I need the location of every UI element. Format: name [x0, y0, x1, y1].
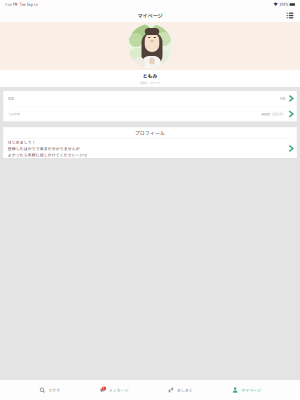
button[interactable]: 1	[99, 380, 129, 399]
button[interactable]: あしあと	[167, 380, 193, 399]
staticText: プロフィール	[135, 130, 165, 136]
staticText: Tue Sep 19	[17, 2, 38, 7]
staticText: ともみ	[142, 72, 157, 79]
button[interactable]: Menu	[283, 9, 296, 22]
staticText: マイページ	[137, 12, 162, 19]
staticText: はじめまして！	[8, 139, 36, 145]
button[interactable]: つぶやき	[3, 106, 296, 121]
button[interactable]: 写真	[3, 91, 296, 106]
button[interactable]: さがす	[39, 380, 60, 399]
staticText: さがす	[48, 387, 60, 393]
button[interactable]: はじめまして！	[3, 139, 296, 158]
staticText: メッセージ	[109, 387, 129, 393]
staticText: 未設定（ひとり）	[261, 111, 285, 116]
staticText: • • •	[147, 1, 152, 5]
staticText: 100%	[279, 2, 288, 7]
staticText: 写真	[8, 96, 14, 101]
staticText: つぶやき	[8, 111, 20, 116]
staticText: （東京／ひとり）	[138, 80, 162, 85]
staticText: よかったら気軽に話しかけてくださいヽ(^^)/	[8, 152, 87, 158]
staticText: 0枚	[280, 96, 285, 101]
button[interactable]: マイページ	[232, 380, 261, 399]
staticText: 7:19 PM	[5, 2, 17, 7]
staticText: 1	[103, 387, 105, 390]
staticText: あしあと	[177, 387, 193, 393]
staticText: マイページ	[241, 387, 261, 393]
staticText: 登録したばかりで楽まだ分かりませんが	[8, 146, 80, 151]
